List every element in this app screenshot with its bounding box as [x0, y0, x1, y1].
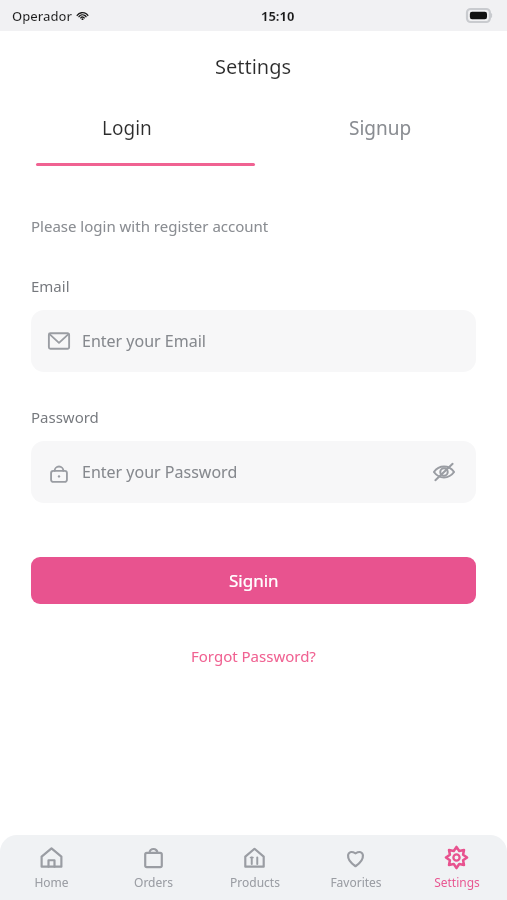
- staticText: Forgot Password?: [191, 646, 316, 666]
- button[interactable]: Enter your Password: [31, 441, 476, 503]
- staticText: Password: [31, 407, 99, 427]
- button[interactable]: Forgot Password?: [183, 642, 324, 670]
- button[interactable]: Products: [204, 835, 305, 900]
- button[interactable]: Settings: [406, 835, 507, 900]
- staticText: Enter your Email: [82, 330, 459, 352]
- button[interactable]: Signin: [31, 557, 476, 604]
- staticText: Enter your Password: [82, 461, 429, 483]
- staticText: Email: [31, 276, 70, 296]
- button[interactable]: Signup: [253, 109, 507, 147]
- staticText: Products: [230, 874, 280, 890]
- staticText: Settings: [434, 874, 480, 890]
- button[interactable]: Favorites: [305, 835, 406, 900]
- button[interactable]: Home: [0, 835, 102, 900]
- staticText: Home: [34, 874, 69, 890]
- button[interactable]: Orders: [102, 835, 204, 900]
- staticText: Signin: [229, 569, 279, 592]
- staticText: Signup: [349, 115, 412, 141]
- staticText: Favorites: [330, 874, 382, 890]
- button[interactable]: Login: [0, 109, 253, 147]
- staticText: Operador: [12, 7, 72, 25]
- button[interactable]: Enter your Email: [31, 310, 476, 372]
- button[interactable]: Show password: [429, 457, 459, 487]
- staticText: 15:10: [261, 7, 295, 25]
- staticText: Login: [102, 115, 152, 141]
- staticText: Orders: [134, 874, 173, 890]
- staticText: Please login with register account: [31, 216, 269, 236]
- staticText: Settings: [215, 53, 292, 80]
